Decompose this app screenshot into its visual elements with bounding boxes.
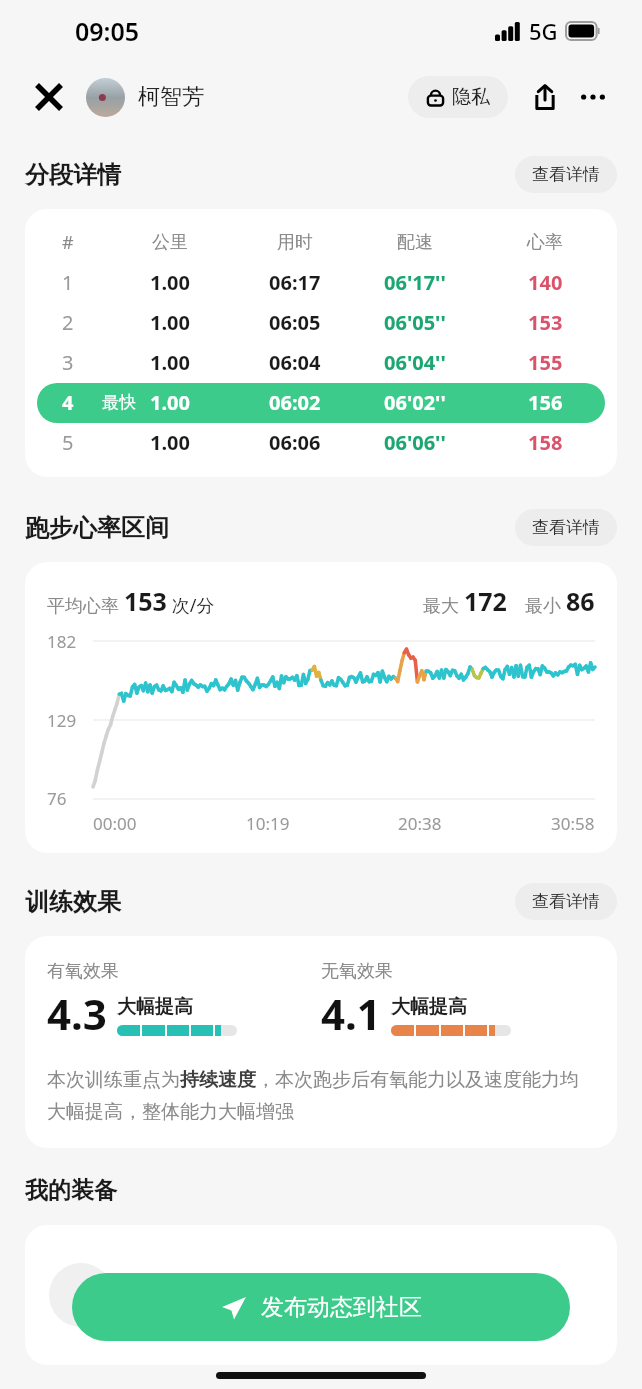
staticText: 1.00: [150, 349, 190, 376]
button[interactable]: 柯智芳: [138, 83, 204, 111]
staticText: 76: [47, 787, 67, 810]
button[interactable]: 隐私: [408, 76, 508, 118]
staticText: 158: [528, 429, 563, 456]
button[interactable]: 5: [37, 423, 605, 463]
staticText: 配速: [397, 231, 433, 254]
button[interactable]: Share: [524, 76, 566, 118]
staticText: 最快: [102, 392, 136, 413]
staticText: 06'05'': [384, 309, 446, 336]
staticText: 20:38: [398, 812, 442, 835]
staticText: 发布动态到社区: [261, 1293, 422, 1322]
staticText: 129: [47, 709, 77, 732]
staticText: 5: [62, 429, 74, 456]
button[interactable]: 4: [37, 383, 605, 423]
staticText: 1: [62, 269, 74, 296]
button[interactable]: 查看详情: [515, 156, 617, 193]
staticText: 公里: [152, 231, 188, 254]
staticText: #: [62, 230, 74, 255]
staticText: 查看详情: [532, 517, 600, 538]
button[interactable]: #: [37, 223, 605, 263]
staticText: 10:19: [246, 812, 290, 835]
staticText: 次/分: [167, 593, 215, 618]
staticText: 153: [124, 584, 167, 618]
staticText: 06:04: [269, 349, 321, 376]
staticText: 1.00: [150, 309, 190, 336]
staticText: 大幅提高: [391, 995, 467, 1019]
staticText: 训练效果: [25, 887, 121, 917]
staticText: 数据来自 Keep 手环 B4: [131, 1282, 339, 1309]
button[interactable]: 查看详情: [515, 509, 617, 546]
staticText: 隐私: [452, 85, 490, 109]
staticText: 172: [464, 584, 507, 618]
staticText: 分段详情: [25, 160, 121, 190]
staticText: 00:00: [93, 812, 137, 835]
staticText: 4.3: [47, 985, 107, 1042]
staticText: 30:58: [551, 812, 595, 835]
staticText: 06:17: [269, 269, 321, 296]
staticText: 06'02'': [384, 389, 446, 416]
staticText: 最大: [423, 593, 464, 618]
staticText: 153: [528, 309, 563, 336]
staticText: 06:05: [269, 309, 321, 336]
staticText: 跑步心率区间: [25, 513, 169, 543]
staticText: 09:05: [75, 14, 140, 48]
button[interactable]: 数据来自 Keep 手环 B4: [25, 1225, 617, 1365]
button[interactable]: 2: [37, 303, 605, 343]
staticText: 查看详情: [532, 164, 600, 185]
button[interactable]: 1: [37, 263, 605, 303]
staticText: 1.00: [150, 429, 190, 456]
staticText: 182: [47, 630, 77, 653]
staticText: 2: [62, 309, 74, 336]
staticText: 06'17'': [384, 269, 446, 296]
staticText: 06'04'': [384, 349, 446, 376]
staticText: 155: [528, 349, 563, 376]
staticText: 最小: [525, 593, 566, 618]
staticText: 1.00: [150, 389, 190, 416]
staticText: 用时: [277, 231, 313, 254]
staticText: 查看详情: [532, 891, 600, 912]
staticText: 4: [62, 389, 74, 416]
staticText: 06'06'': [384, 429, 446, 456]
staticText: 4.1: [321, 985, 381, 1042]
staticText: 06:06: [269, 429, 321, 456]
staticText: 1.00: [150, 269, 190, 296]
staticText: 心率: [527, 231, 563, 254]
button[interactable]: 发布动态到社区: [72, 1273, 570, 1341]
button[interactable]: Close: [28, 76, 70, 118]
staticText: 156: [528, 389, 563, 416]
staticText: 本次训练重点为持续速度，本次跑步后有氧能力以及速度能力均大幅提高，整体能力大幅增…: [47, 1068, 595, 1124]
staticText: 有氧效果: [47, 960, 119, 983]
staticText: 06:02: [269, 389, 321, 416]
staticText: 140: [528, 269, 563, 296]
staticText: 无氧效果: [321, 960, 393, 983]
button[interactable]: 查看详情: [515, 883, 617, 920]
staticText: 5G: [529, 16, 558, 46]
staticText: 大幅提高: [117, 995, 193, 1019]
staticText: 86: [566, 584, 595, 618]
button[interactable]: 3: [37, 343, 605, 383]
button[interactable]: More options: [572, 76, 614, 118]
staticText: 我的装备: [25, 1176, 117, 1205]
staticText: 平均心率: [47, 593, 124, 618]
staticText: 3: [62, 349, 74, 376]
